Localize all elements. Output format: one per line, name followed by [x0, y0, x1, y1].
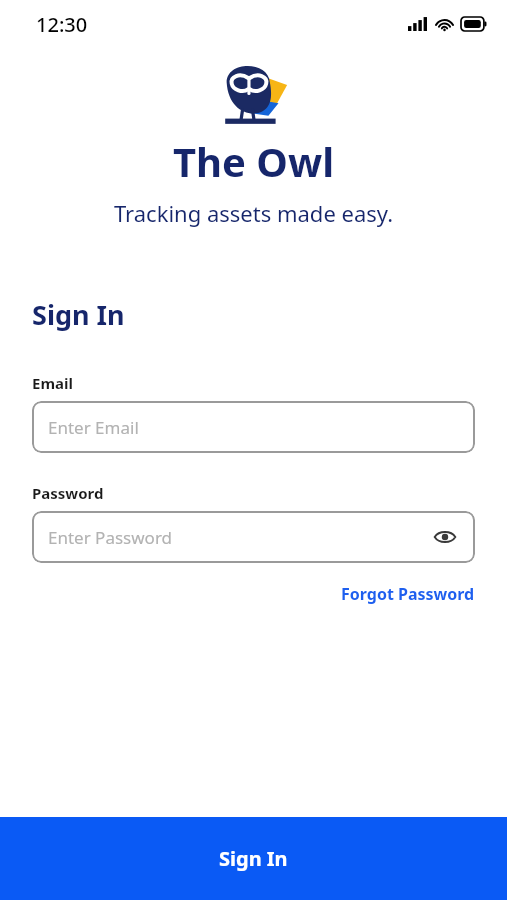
button[interactable]: Enter Password — [32, 511, 475, 563]
staticText: Email — [32, 373, 73, 393]
staticText: The Owl — [0, 134, 507, 188]
button[interactable]: Show password — [429, 521, 461, 553]
button[interactable]: Enter Email — [32, 401, 475, 453]
staticText: 12:30 — [36, 11, 88, 38]
staticText: Tracking assets made easy. — [0, 198, 507, 228]
staticText: Sign In — [32, 296, 125, 333]
staticText: Password — [32, 483, 104, 503]
button[interactable]: Sign In — [0, 817, 507, 900]
staticText: Forgot Password — [341, 583, 475, 605]
staticText: Sign In — [219, 845, 288, 872]
button[interactable]: Forgot Password — [341, 583, 475, 605]
staticText: Enter Email — [48, 416, 139, 439]
staticText: Enter Password — [48, 526, 173, 549]
